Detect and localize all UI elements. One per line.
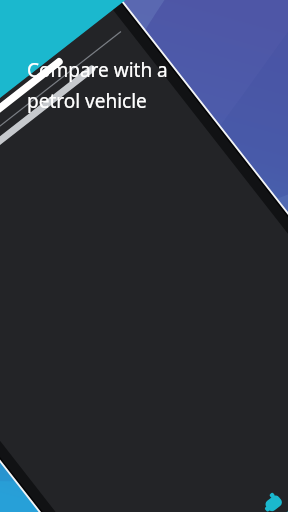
staticText: petrol vehicle <box>27 88 147 114</box>
staticText: Compare with a <box>27 57 168 83</box>
